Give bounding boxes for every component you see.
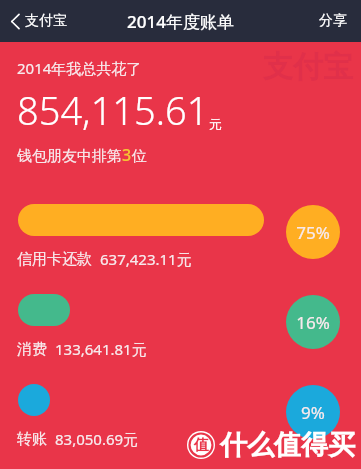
button[interactable]: 9%: [0, 374, 361, 464]
staticText: 元: [209, 116, 222, 132]
staticText: 钱包朋友中排第: [17, 147, 122, 166]
staticText: 2014年我总共花了: [17, 58, 142, 78]
staticText: 9%: [301, 401, 325, 424]
staticText: 支付宝: [25, 12, 67, 30]
staticText: 分享: [319, 12, 347, 30]
staticText: 16%: [296, 311, 330, 334]
staticText: 3: [122, 144, 132, 166]
button[interactable]: 75%: [0, 194, 361, 284]
staticText: 75%: [296, 221, 330, 244]
staticText: 133,641.81元: [55, 339, 147, 359]
staticText: 支付宝: [263, 48, 353, 86]
staticText: 值: [194, 436, 209, 455]
staticText: 2014年度账单: [127, 10, 234, 33]
staticText: 信用卡还款: [17, 250, 92, 269]
staticText: 什么值得买: [220, 428, 355, 462]
staticText: 83,050.69元: [55, 429, 139, 449]
button[interactable]: 16%: [0, 284, 361, 374]
staticText: 转账: [17, 430, 47, 449]
staticText: 消费: [17, 340, 47, 359]
staticText: 854,115.61: [17, 84, 209, 136]
staticText: 637,423.11元: [100, 249, 192, 269]
staticText: 位: [132, 147, 147, 166]
button[interactable]: 返回 支付宝: [0, 6, 79, 36]
button[interactable]: 分享: [305, 4, 361, 38]
